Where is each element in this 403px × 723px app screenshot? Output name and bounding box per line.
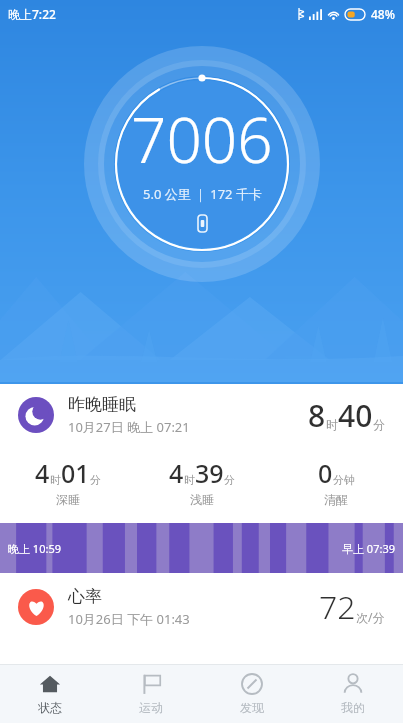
staticText: 时 <box>184 473 195 487</box>
button[interactable]: 4 <box>0 456 135 507</box>
staticText: 分 <box>90 473 101 487</box>
staticText: 时 <box>326 417 338 432</box>
staticText: 分 <box>224 473 235 487</box>
staticText: 时 <box>50 473 61 487</box>
staticText: 清醒 <box>324 492 348 507</box>
staticText: 10月26日 下午 01:43 <box>68 610 190 628</box>
staticText: 5.0 公里 ｜ 172 千卡 <box>143 185 262 203</box>
staticText: 浅睡 <box>190 492 214 507</box>
button[interactable]: 4 <box>135 456 269 507</box>
button[interactable]: 状态 <box>0 665 100 723</box>
staticText: 4 <box>35 456 50 490</box>
button[interactable]: 昨晚睡眠 <box>0 384 403 444</box>
staticText: 8 <box>308 395 326 436</box>
button[interactable]: 发现 <box>201 665 302 723</box>
staticText: 72 <box>319 585 356 629</box>
button[interactable]: 0 <box>269 456 403 507</box>
button[interactable]: 晚上 10:59 <box>0 523 403 573</box>
staticText: 昨晚睡眠 <box>68 394 136 415</box>
staticText: 我的 <box>341 700 365 715</box>
staticText: 晚上 10:59 <box>8 541 61 556</box>
button[interactable]: 我的 <box>302 665 403 723</box>
staticText: 10月27日 晚上 07:21 <box>68 418 190 436</box>
staticText: 01 <box>61 456 90 490</box>
staticText: 深睡 <box>56 492 80 507</box>
staticText: 次/分 <box>356 609 385 625</box>
staticText: 晚上7:22 <box>8 6 56 22</box>
staticText: 40 <box>338 395 373 436</box>
button[interactable]: 心率 <box>0 573 403 641</box>
staticText: 39 <box>195 456 224 490</box>
staticText: 7006 <box>131 97 273 181</box>
staticText: 4 <box>169 456 184 490</box>
staticText: 0 <box>318 456 333 490</box>
staticText: 早上 07:39 <box>342 541 395 556</box>
staticText: 分钟 <box>333 473 355 487</box>
staticText: 心率 <box>68 586 102 607</box>
staticText: 发现 <box>240 700 264 715</box>
staticText: 48% <box>371 6 395 22</box>
staticText: 分 <box>373 417 385 432</box>
staticText: 运动 <box>139 700 163 715</box>
staticText: 状态 <box>38 700 62 715</box>
other: Device <box>198 215 207 232</box>
button[interactable]: 运动 <box>100 665 201 723</box>
